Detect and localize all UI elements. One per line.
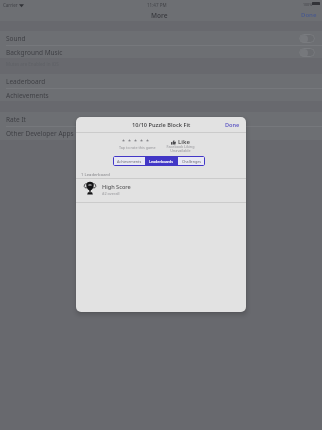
button[interactable]: Achievements: [113, 156, 145, 166]
button[interactable]: Done: [225, 121, 240, 129]
staticText: Rate It: [6, 115, 26, 124]
button[interactable]: Achievements: [0, 88, 322, 102]
staticText: Other Developer Apps: [6, 129, 74, 138]
button[interactable]: Done: [301, 11, 317, 19]
staticText: 100%: [303, 2, 313, 7]
button[interactable]: Rate this game: [122, 139, 125, 142]
staticText: 11:47 PM: [147, 2, 167, 8]
button[interactable]: Like: [171, 138, 191, 146]
staticText: 10/10 Puzzle Block Fit: [132, 121, 191, 129]
staticText: Like: [178, 138, 191, 146]
staticText: Carrier: [3, 2, 18, 8]
staticText: Background Music: [6, 48, 63, 57]
staticText: Leaderboard: [6, 77, 46, 86]
button[interactable]: Rate this game: [128, 139, 131, 142]
staticText: Challenges: [182, 159, 202, 164]
staticText: Achievements: [6, 91, 49, 100]
staticText: Facebook Liking Unavailable: [164, 144, 197, 153]
staticText: #2 overall: [102, 191, 120, 196]
button[interactable]: Rate It: [0, 112, 322, 126]
button[interactable]: Other Developer Apps: [0, 126, 322, 140]
staticText: Sound: [6, 34, 26, 43]
button[interactable]: Rate this game: [134, 139, 137, 142]
staticText: 1 Leaderboard: [81, 172, 110, 178]
button[interactable]: Toggle Sound: [299, 34, 315, 43]
button[interactable]: Background Music: [0, 45, 322, 59]
button[interactable]: Leaderboard: [0, 74, 322, 88]
button[interactable]: Leaderboards: [146, 156, 177, 166]
staticText: Leaderboards: [149, 159, 174, 164]
staticText: Done: [225, 121, 240, 129]
staticText: Tap to rate this game: [119, 145, 156, 150]
staticText: More: [151, 11, 168, 20]
button[interactable]: Sound: [0, 31, 322, 45]
button[interactable]: Toggle Background Music: [299, 48, 315, 57]
staticText: Done: [301, 11, 317, 19]
button[interactable]: Challenges: [178, 156, 205, 166]
staticText: High Score: [102, 183, 131, 191]
button[interactable]: High Score: [76, 179, 246, 202]
staticText: Achievements: [117, 159, 142, 164]
button[interactable]: Rate this game: [146, 139, 149, 142]
button[interactable]: Rate this game: [140, 139, 143, 142]
